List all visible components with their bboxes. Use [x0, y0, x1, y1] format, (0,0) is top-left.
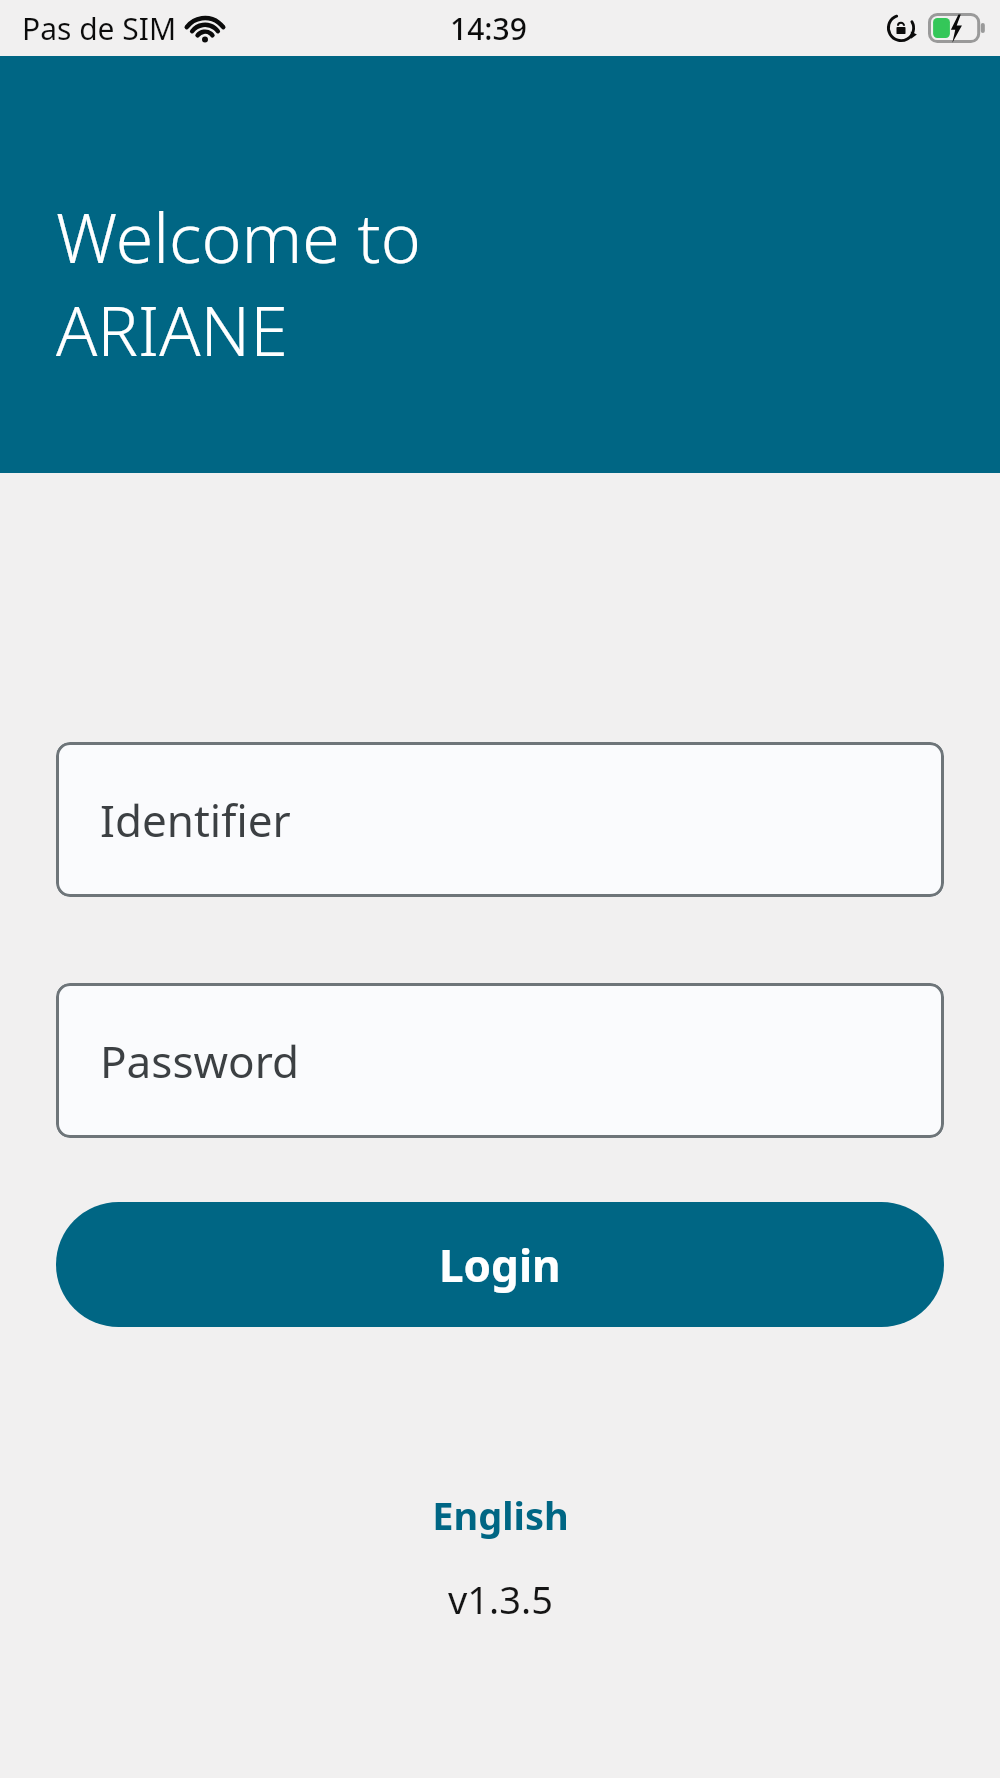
other: Rotation lock [886, 13, 916, 43]
staticText: English [432, 1489, 569, 1541]
staticText: Identifier [100, 790, 291, 850]
staticText: Login [439, 1235, 561, 1295]
staticText: Password [100, 1031, 300, 1091]
staticText: Pas de SIM [22, 8, 177, 49]
staticText: ARIANE [56, 283, 288, 376]
staticText: v1.3.5 [448, 1573, 553, 1625]
other: Battery charging [928, 13, 986, 43]
button[interactable]: English [408, 1481, 593, 1549]
button[interactable]: Login [56, 1202, 944, 1327]
staticText: Welcome to [56, 190, 421, 283]
staticText: 14:39 [450, 8, 527, 49]
button[interactable]: Password [56, 983, 944, 1138]
button[interactable]: Identifier [56, 742, 944, 897]
